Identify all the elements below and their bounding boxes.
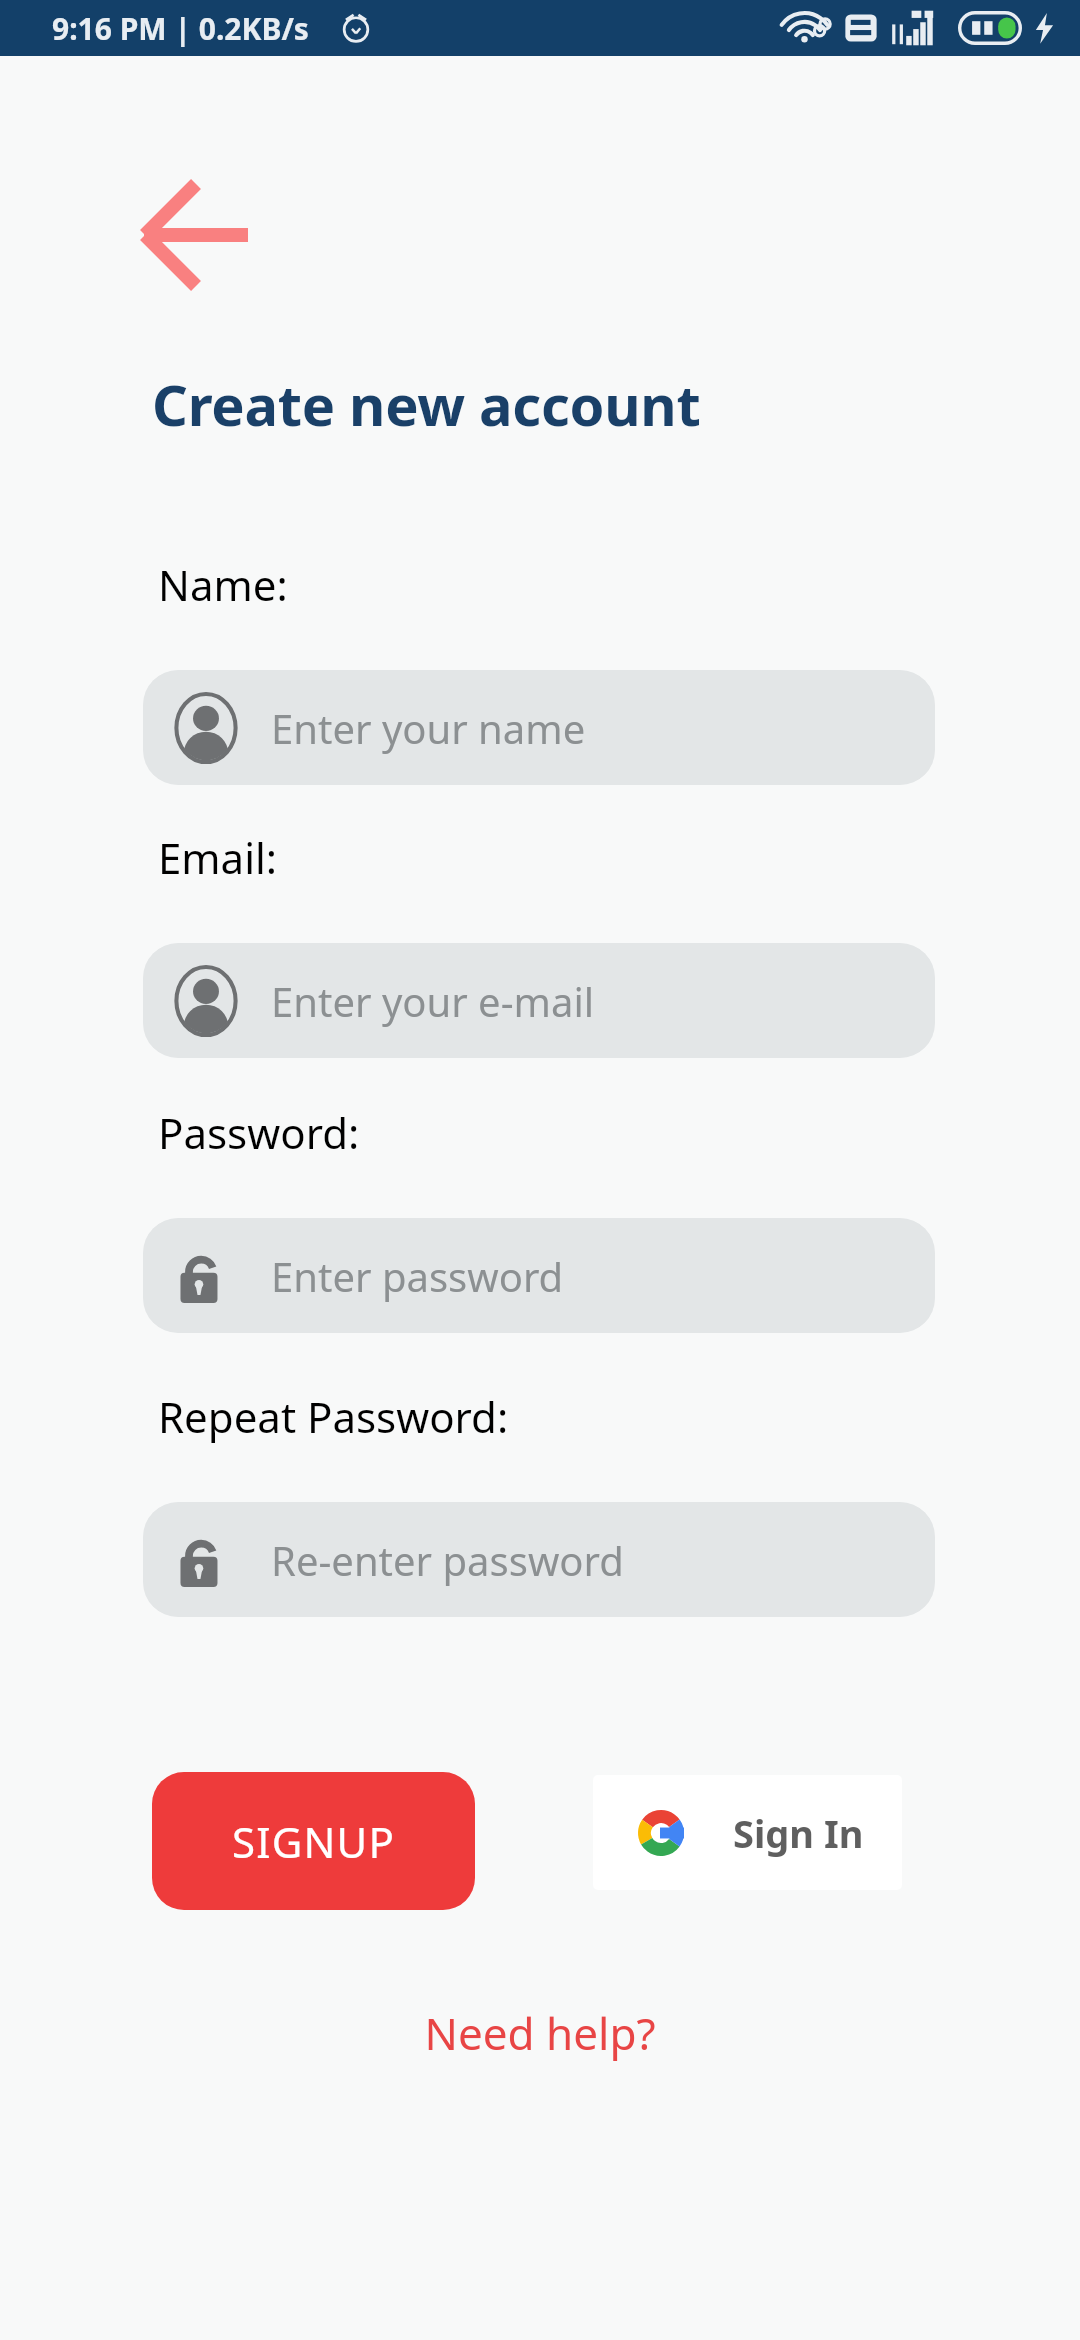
button[interactable]: SIGNUP	[152, 1772, 475, 1910]
button[interactable]: Enter your name	[143, 670, 935, 785]
staticText: Enter your name	[271, 701, 586, 755]
staticText: Sign In	[733, 1807, 864, 1859]
button[interactable]: Enter your e-mail	[143, 943, 935, 1058]
staticText: Need help?	[424, 2003, 656, 2063]
button[interactable]: Sign In	[593, 1775, 902, 1890]
staticText: Repeat Password:	[158, 1388, 509, 1445]
staticText: Enter password	[271, 1249, 564, 1303]
staticText: Enter your e-mail	[271, 974, 595, 1028]
staticText: Name:	[158, 556, 288, 613]
button[interactable]: Back	[128, 170, 264, 300]
button[interactable]: Need help?	[0, 1988, 1080, 2078]
staticText: Re-enter password	[271, 1533, 624, 1587]
staticText: Password:	[158, 1104, 360, 1161]
staticText: Create new account	[152, 366, 701, 442]
staticText: 9:16 PM | 0.2KB/s	[52, 8, 309, 49]
button[interactable]: Re-enter password	[143, 1502, 935, 1617]
staticText: Email:	[158, 829, 278, 886]
button[interactable]: Enter password	[143, 1218, 935, 1333]
staticText: SIGNUP	[232, 1813, 396, 1870]
